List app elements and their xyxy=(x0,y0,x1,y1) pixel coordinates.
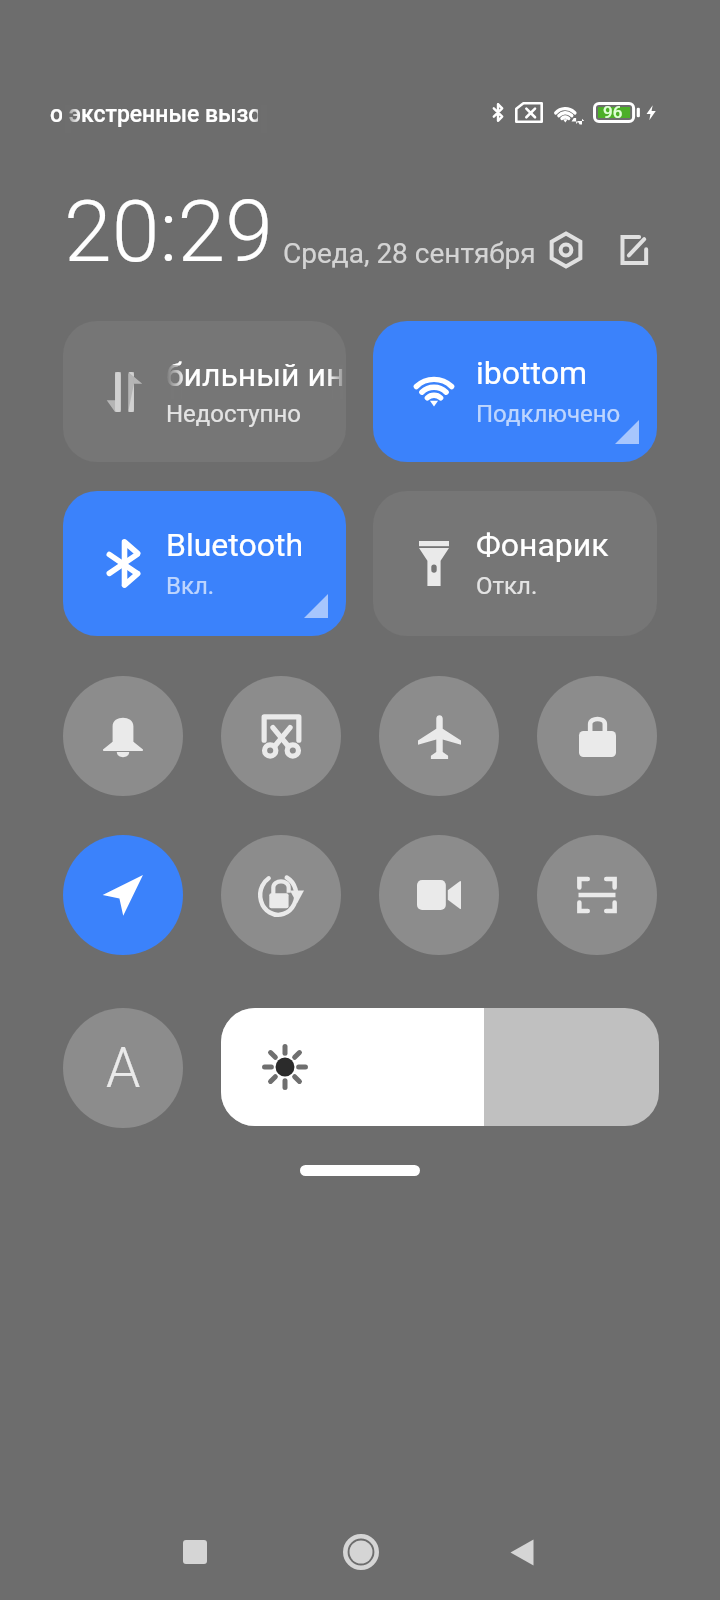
button[interactable]: Bluetooth xyxy=(63,491,346,636)
button[interactable]: Back xyxy=(499,1529,545,1575)
button[interactable]: Settings xyxy=(542,226,590,274)
staticText: Недоступно xyxy=(166,400,301,428)
staticText: ibottom xyxy=(476,354,587,392)
staticText: 20:29 xyxy=(64,181,273,281)
button[interactable]: Lock xyxy=(537,676,657,796)
button[interactable]: ibottom xyxy=(373,321,657,462)
button[interactable]: Recents xyxy=(173,1530,217,1574)
button[interactable]: бильный ин xyxy=(63,321,346,462)
button[interactable]: Do not disturb xyxy=(63,676,183,796)
staticText: Вкл. xyxy=(166,572,215,600)
button[interactable]: Фонарик xyxy=(373,491,657,636)
button[interactable]: Auto rotate xyxy=(221,835,341,955)
staticText: бильный ин xyxy=(166,356,345,390)
button[interactable]: Brightness xyxy=(221,1008,659,1126)
staticText: 96 xyxy=(603,102,623,122)
staticText: A xyxy=(106,1036,141,1100)
staticText: Фонарик xyxy=(476,526,609,564)
button[interactable]: Edit xyxy=(610,226,658,274)
button[interactable]: Screen record xyxy=(379,835,499,955)
staticText: Подключено xyxy=(476,400,621,428)
button[interactable]: Home xyxy=(337,1528,384,1575)
button[interactable]: Location xyxy=(63,835,183,955)
staticText: Bluetooth xyxy=(166,526,304,564)
staticText: Среда, 28 сентября xyxy=(283,237,536,270)
button[interactable]: Airplane mode xyxy=(379,676,499,796)
button[interactable]: Auto brightness xyxy=(63,1008,183,1128)
button[interactable]: Scan xyxy=(537,835,657,955)
button[interactable]: Screenshot xyxy=(221,676,341,796)
staticText: Откл. xyxy=(476,572,538,600)
staticText: о экстренные вызо xyxy=(50,101,258,128)
